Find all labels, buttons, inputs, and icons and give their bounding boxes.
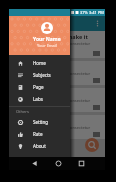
staticText: Subjects [33,72,51,78]
button[interactable]: Recent apps [76,158,87,169]
button[interactable]: Setting [9,116,70,128]
button[interactable]: Page [9,81,70,93]
staticText: Lorem ipsum dolor sit amet, consectetur … [14,125,101,135]
staticText: Look In [14,63,35,70]
staticText: Page [33,84,44,90]
staticText: Your Name [33,36,61,43]
button[interactable]: Home [9,57,70,69]
button[interactable]: Subjects [9,69,70,81]
button[interactable]: Design is what you make it [9,31,105,58]
button[interactable]: More options [93,19,102,28]
staticText: Others [16,109,29,114]
staticText: Your Email [37,43,57,48]
staticText: Lorem ipsum dolor sit amet, consectetur … [14,41,101,51]
staticText: In Nature (Komb [14,117,60,124]
staticText: Labs [33,96,43,102]
button[interactable]: In Nature (Komb [9,115,105,139]
button[interactable]: Back [29,158,40,169]
staticText: Setting [33,119,48,125]
button[interactable]: Labs [9,93,70,105]
button[interactable]: Home [53,158,64,169]
staticText: Rate [33,131,43,137]
button[interactable]: About [9,140,70,152]
button[interactable]: Look In [9,61,105,85]
staticText: Lorem ipsum dolor sit amet, consectetur … [14,98,101,108]
button[interactable]: The Power [9,88,105,112]
staticText: Home [33,60,46,66]
staticText: About [33,143,46,149]
staticText: Lorem ipsum dolor sit amet, consectetur … [14,71,101,81]
staticText: Design is what you make it [14,33,88,40]
button[interactable]: Search [85,138,99,152]
staticText: 37% 3:41 PM [80,10,104,15]
button[interactable]: Rate [9,128,70,140]
